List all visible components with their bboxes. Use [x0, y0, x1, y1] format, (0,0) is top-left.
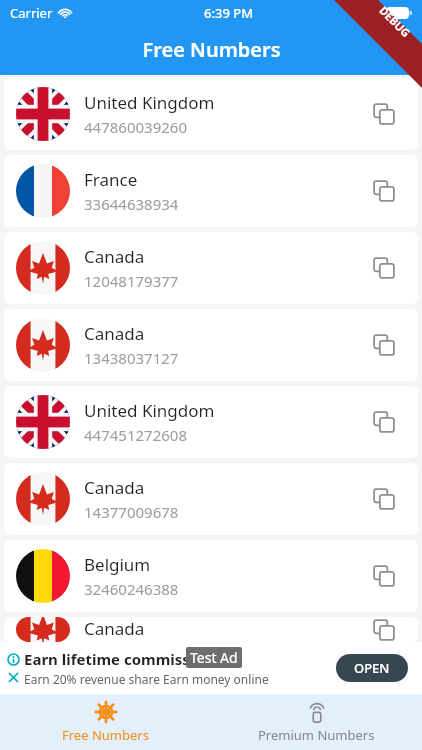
staticText: DEBUG	[376, 3, 414, 40]
button[interactable]: Copy number	[362, 400, 406, 444]
button[interactable]: Copy number	[362, 246, 406, 290]
staticText: United Kingdom	[84, 399, 215, 422]
button[interactable]: Copy number	[362, 554, 406, 598]
staticText: Test Ad	[190, 648, 238, 667]
button[interactable]: Copy number	[362, 92, 406, 136]
staticText: Earn 20% revenue share Earn money online	[24, 671, 269, 687]
staticText: 14377009678	[84, 502, 179, 522]
button[interactable]: OPEN	[336, 654, 408, 682]
button[interactable]: Premium Numbers	[211, 694, 422, 750]
button[interactable]: United Kingdom	[4, 386, 418, 458]
staticText: OPEN	[354, 659, 390, 677]
staticText: Canada	[84, 617, 145, 640]
staticText: Canada	[84, 322, 145, 345]
staticText: Free Numbers	[62, 726, 149, 744]
staticText: Free Numbers	[142, 36, 281, 63]
button[interactable]: United Kingdom	[4, 78, 418, 150]
button[interactable]: Belgium	[4, 540, 418, 612]
staticText: 6:39 PM	[204, 4, 254, 22]
button[interactable]: Free Numbers	[0, 694, 211, 750]
staticText: Earn lifetime commissions	[24, 649, 221, 669]
staticText: 32460246388	[84, 579, 179, 599]
staticText: 33644638934	[84, 194, 179, 214]
staticText: 447451272608	[84, 425, 187, 445]
button[interactable]: Copy number	[362, 323, 406, 367]
staticText: 13438037127	[84, 348, 179, 368]
staticText: 447860039260	[84, 117, 187, 137]
button[interactable]: Canada	[4, 617, 418, 642]
staticText: Belgium	[84, 553, 151, 576]
button[interactable]: Copy number	[362, 477, 406, 521]
button[interactable]: Copy number	[362, 617, 406, 642]
staticText: Premium Numbers	[258, 726, 375, 744]
button[interactable]: France	[4, 155, 418, 227]
staticText: France	[84, 168, 138, 191]
staticText: Carrier	[10, 4, 53, 22]
staticText: United Kingdom	[84, 91, 215, 114]
button[interactable]: Canada	[4, 309, 418, 381]
staticText: 12048179377	[84, 271, 179, 291]
staticText: Canada	[84, 245, 145, 268]
button[interactable]: Canada	[4, 232, 418, 304]
button[interactable]: Copy number	[362, 169, 406, 213]
staticText: Canada	[84, 476, 145, 499]
button[interactable]: Canada	[4, 463, 418, 535]
